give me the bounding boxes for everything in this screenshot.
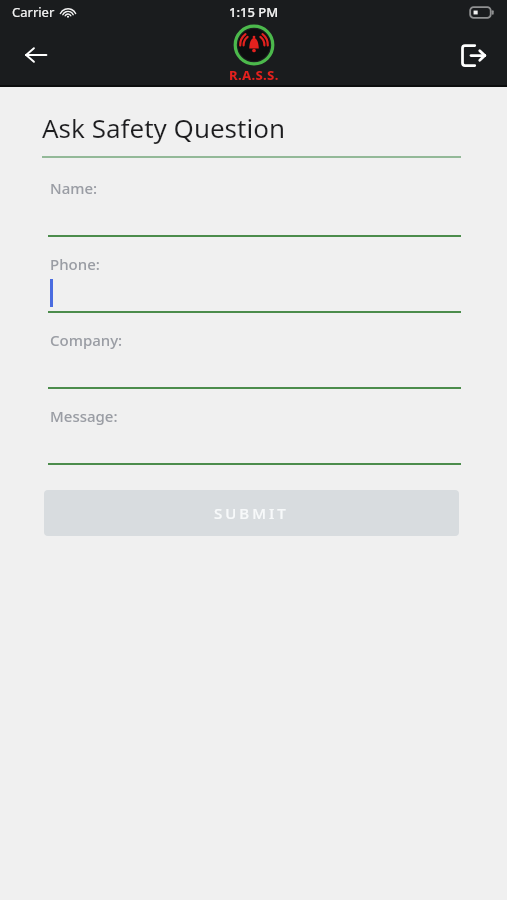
staticText: Phone: bbox=[50, 254, 100, 274]
button[interactable]: Log out bbox=[451, 33, 495, 77]
staticText: R.A.S.S. bbox=[229, 66, 279, 84]
button[interactable]: Phone: bbox=[42, 254, 461, 313]
staticText: SUBMIT bbox=[214, 503, 289, 523]
button[interactable]: Name: bbox=[42, 178, 461, 237]
button[interactable]: Message: bbox=[42, 406, 461, 465]
staticText: 1:15 PM bbox=[229, 3, 279, 21]
staticText: Company: bbox=[50, 330, 123, 350]
button[interactable]: Company: bbox=[42, 330, 461, 389]
button[interactable]: SUBMIT bbox=[44, 490, 459, 536]
button[interactable]: Back bbox=[14, 33, 58, 77]
staticText: Carrier bbox=[12, 3, 55, 21]
staticText: Ask Safety Question bbox=[42, 110, 285, 145]
staticText: Name: bbox=[50, 178, 98, 198]
staticText: Message: bbox=[50, 406, 118, 426]
